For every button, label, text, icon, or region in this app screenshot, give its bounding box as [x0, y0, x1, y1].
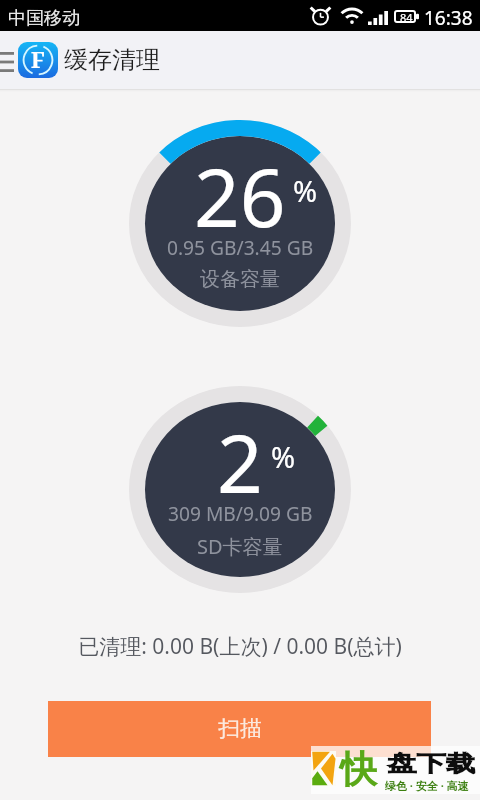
button[interactable]: 26 — [129, 120, 351, 327]
staticText: % — [271, 437, 296, 476]
button[interactable]: Menu — [0, 52, 14, 72]
staticText: 盘下载 — [387, 750, 475, 778]
staticText: 中国移动 — [8, 7, 80, 30]
staticText: 2 — [217, 407, 263, 516]
staticText: F — [31, 44, 45, 74]
staticText: 快 — [340, 746, 377, 793]
staticText: 扫描 — [218, 715, 262, 743]
staticText: 16:38 — [424, 5, 473, 31]
staticText: 84 — [400, 10, 413, 23]
staticText: 绿色 · 安全 · 高速 — [385, 778, 469, 793]
staticText: 设备容量 — [200, 267, 280, 292]
staticText: 26 — [194, 141, 286, 250]
button[interactable]: 2 — [129, 386, 351, 593]
staticText: 0.95 GB/3.45 GB — [167, 234, 314, 260]
button[interactable]: 扫描 — [48, 701, 431, 757]
staticText: SD卡容量 — [197, 533, 283, 560]
staticText: 309 MB/9.09 GB — [168, 500, 313, 526]
staticText: % — [293, 171, 318, 210]
staticText: 已清理: 0.00 B(上次) / 0.00 B(总计) — [0, 632, 480, 661]
staticText: 缓存清理 — [64, 45, 160, 75]
